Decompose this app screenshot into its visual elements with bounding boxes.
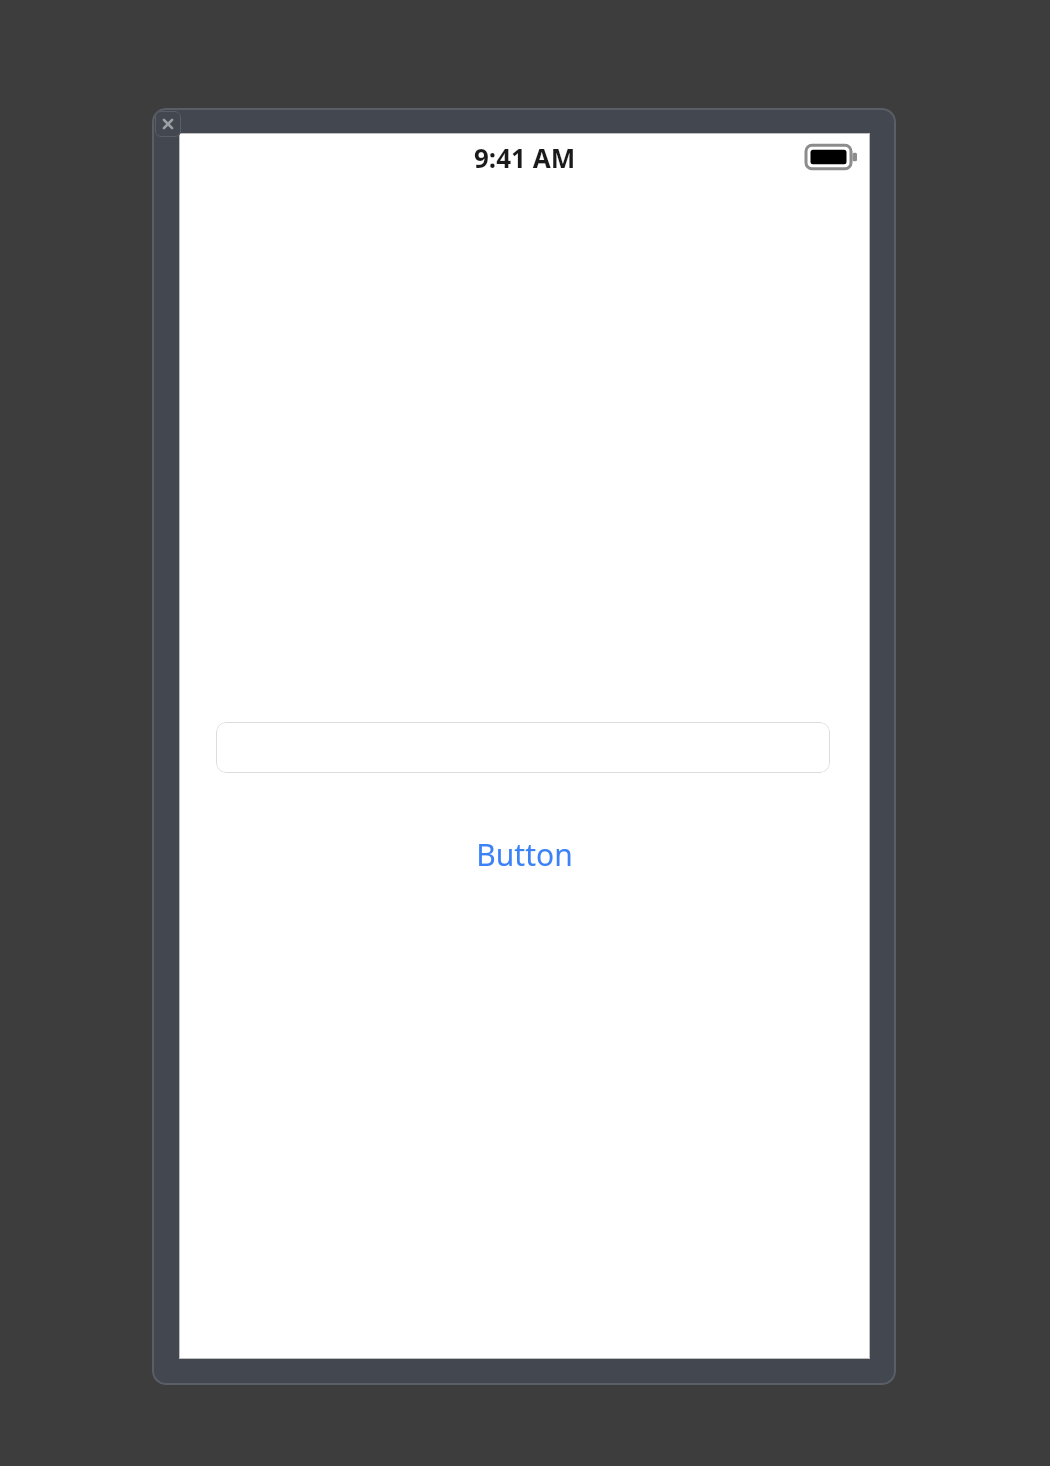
staticText: Button <box>476 834 573 875</box>
button[interactable]: Button <box>180 826 869 882</box>
button[interactable]: Close <box>155 111 181 137</box>
staticText: 9:41 AM <box>474 140 576 175</box>
button[interactable]: Text field <box>216 722 830 773</box>
